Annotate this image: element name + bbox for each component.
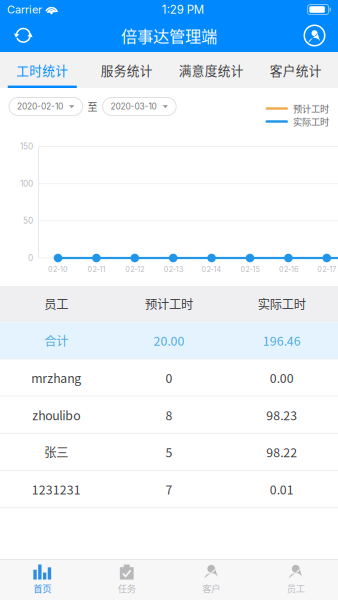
button[interactable]: 任务 (84, 560, 169, 600)
staticText: Carrier (7, 3, 42, 16)
button[interactable]: 2020-03-10 (103, 97, 176, 115)
button[interactable]: 2020-02-10 (9, 97, 83, 115)
staticText: 02-16 (279, 265, 298, 274)
staticText: 150 (20, 141, 33, 151)
staticText: 98.22 (266, 443, 297, 461)
staticText: 0.01 (270, 480, 294, 498)
staticText: 2020-02-10 (17, 101, 63, 112)
staticText: 196.46 (263, 331, 301, 349)
staticText: 至 (88, 99, 98, 114)
staticText: 工时统计 (16, 61, 68, 79)
staticText: 8 (165, 406, 172, 424)
staticText: 02-17 (317, 265, 336, 274)
staticText: 服务统计 (101, 61, 153, 79)
staticText: 客户统计 (270, 61, 322, 79)
button[interactable]: 服务统计 (84, 52, 169, 88)
staticText: 0.00 (270, 369, 294, 386)
staticText: 1:29 PM (162, 3, 204, 16)
staticText: 02-13 (164, 265, 183, 274)
staticText: 02-11 (87, 265, 105, 274)
staticText: 预计工时 (293, 102, 329, 115)
staticText: 倍事达管理端 (121, 24, 217, 47)
button[interactable]: Refresh (0, 19, 47, 52)
button[interactable]: 首页 (0, 560, 84, 600)
staticText: 预计工时 (145, 295, 193, 313)
staticText: 客户 (202, 581, 220, 595)
button[interactable]: 客户 (169, 560, 253, 600)
staticText: 7 (165, 480, 172, 498)
button[interactable]: 满意度统计 (169, 52, 253, 88)
staticText: 员工 (287, 581, 305, 595)
staticText: 张三 (44, 443, 68, 461)
staticText: 0 (165, 369, 172, 386)
staticText: 满意度统计 (179, 61, 244, 79)
staticText: 合计 (44, 331, 68, 349)
staticText: 任务 (118, 581, 136, 595)
button[interactable]: Account (291, 19, 338, 52)
staticText: 98.23 (266, 406, 297, 424)
staticText: 实际工时 (258, 295, 306, 313)
staticText: 0 (28, 253, 33, 263)
staticText: 20.00 (153, 331, 184, 349)
staticText: 员工 (44, 295, 68, 313)
button[interactable]: 员工 (253, 560, 338, 600)
staticText: 02-10 (48, 265, 68, 274)
staticText: 1231231 (32, 480, 81, 498)
staticText: 02-15 (240, 265, 259, 274)
staticText: 2020-03-10 (111, 101, 157, 112)
button[interactable]: 工时统计 (0, 52, 84, 88)
staticText: 50 (23, 216, 33, 226)
staticText: 5 (165, 443, 172, 461)
staticText: zhoulibo (32, 406, 80, 424)
staticText: 实际工时 (293, 115, 329, 128)
staticText: mrzhang (31, 369, 81, 386)
staticText: 02-14 (202, 265, 222, 274)
staticText: 02-12 (125, 265, 144, 274)
button[interactable]: 客户统计 (253, 52, 338, 88)
staticText: 100 (20, 179, 33, 189)
staticText: 首页 (33, 581, 51, 595)
